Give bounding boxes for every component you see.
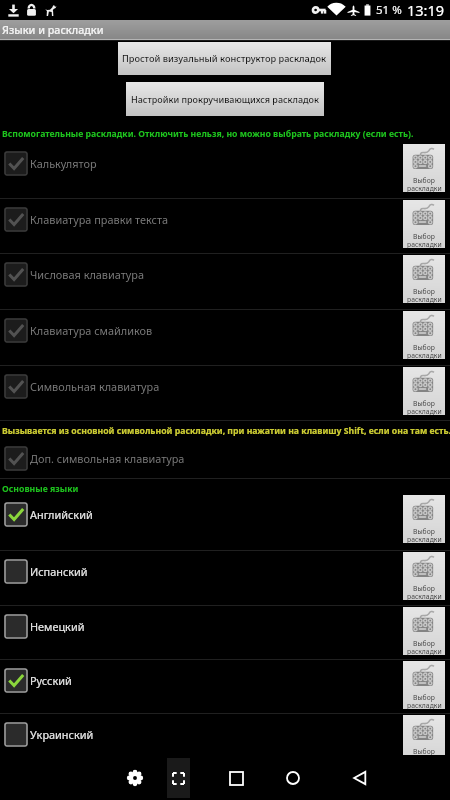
staticText: Выбор: [413, 747, 435, 756]
button[interactable]: Выбор раскладки: [403, 311, 445, 359]
button[interactable]: Выбор раскладки: [403, 144, 445, 192]
staticText: 13:19: [407, 0, 445, 20]
button[interactable]: Выбор раскладки: [403, 200, 445, 248]
staticText: Клавиатура правки текста: [30, 212, 169, 227]
staticText: Числовая клавиатура: [30, 267, 145, 282]
button[interactable]: Доп. символьная клавиатура: [0, 438, 450, 479]
button[interactable]: Выбор раскладки: [403, 607, 445, 655]
staticText: раскладки: [407, 592, 442, 601]
button[interactable]: Украинский: [0, 714, 450, 768]
button[interactable]: Settings: [121, 764, 149, 792]
button[interactable]: Клавиатура правки текста: [0, 199, 450, 254]
staticText: Калькулятор: [30, 156, 97, 171]
button[interactable]: Home: [279, 764, 307, 792]
button[interactable]: Русский: [0, 660, 450, 714]
staticText: раскладки: [407, 184, 442, 193]
button[interactable]: Выбор раскладки: [403, 367, 445, 415]
button[interactable]: Английский: [0, 494, 450, 551]
staticText: Настройки прокручивающихся раскладок: [131, 93, 319, 105]
button[interactable]: Немецкий: [0, 606, 450, 660]
staticText: Выбор: [413, 639, 435, 648]
staticText: Символьная клавиатура: [30, 379, 160, 394]
staticText: Клавиатура смайликов: [30, 323, 153, 338]
staticText: Вызывается из основной символьной раскла…: [2, 425, 450, 437]
staticText: Вспомогательные раскладки. Отключить нел…: [2, 128, 450, 140]
staticText: Языки и раскладки: [2, 23, 104, 38]
staticText: Украинский: [30, 727, 94, 742]
staticText: Выбор: [413, 287, 435, 296]
button[interactable]: Выбор раскладки: [403, 552, 445, 600]
staticText: Выбор: [413, 343, 435, 352]
button[interactable]: Клавиатура смайликов: [0, 310, 450, 366]
button[interactable]: Выбор раскладки: [403, 255, 445, 303]
button[interactable]: Выбор раскладки: [403, 495, 445, 543]
staticText: раскладки: [407, 351, 442, 360]
button[interactable]: Back: [346, 764, 374, 792]
staticText: Русский: [30, 673, 72, 688]
button[interactable]: Fullscreen: [167, 758, 190, 798]
button[interactable]: Числовая клавиатура: [0, 254, 450, 310]
button[interactable]: Выбор раскладки: [403, 661, 445, 709]
staticText: раскладки: [407, 240, 442, 249]
staticText: Выбор: [413, 232, 435, 241]
staticText: 51 %: [376, 2, 402, 18]
button[interactable]: Простой визуальный конструктор раскладок: [118, 42, 331, 75]
staticText: Выбор: [413, 399, 435, 408]
staticText: Испанский: [30, 564, 88, 579]
button[interactable]: Настройки прокручивающихся раскладок: [126, 82, 324, 116]
button[interactable]: Выбор раскладки: [403, 715, 445, 763]
button[interactable]: Калькулятор: [0, 143, 450, 199]
staticText: раскладки: [407, 295, 442, 304]
staticText: Выбор: [413, 584, 435, 593]
staticText: раскладки: [407, 701, 442, 710]
staticText: раскладки: [407, 647, 442, 656]
button[interactable]: Символьная клавиатура: [0, 366, 450, 421]
staticText: раскладки: [407, 407, 442, 416]
staticText: Выбор: [413, 527, 435, 536]
staticText: Выбор: [413, 693, 435, 702]
staticText: Английский: [30, 507, 93, 522]
staticText: Простой визуальный конструктор раскладок: [122, 52, 327, 65]
button[interactable]: Recent apps: [222, 764, 250, 792]
staticText: Немецкий: [30, 619, 85, 634]
staticText: Основные языки: [2, 483, 450, 495]
staticText: Выбор: [413, 176, 435, 185]
button[interactable]: Испанский: [0, 551, 450, 606]
staticText: раскладки: [407, 535, 442, 544]
staticText: Доп. символьная клавиатура: [30, 451, 185, 466]
